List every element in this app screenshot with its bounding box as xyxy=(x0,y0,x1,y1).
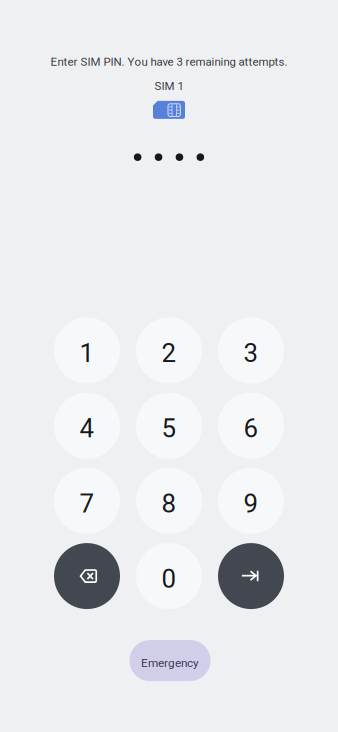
button[interactable]: 7 xyxy=(54,468,120,534)
button[interactable]: 5 xyxy=(136,393,202,459)
button[interactable]: 6 xyxy=(218,393,284,459)
staticText: 8 xyxy=(161,488,176,519)
button[interactable]: 2 xyxy=(136,317,202,383)
staticText: 7 xyxy=(79,488,94,519)
button[interactable]: 8 xyxy=(136,468,202,534)
staticText: 2 xyxy=(161,338,176,368)
button[interactable]: 4 xyxy=(54,393,120,459)
staticText: 0 xyxy=(161,564,176,594)
button[interactable]: Emergency xyxy=(129,640,210,681)
staticText: 1 xyxy=(79,338,94,368)
staticText: 3 xyxy=(243,338,258,368)
staticText: 5 xyxy=(161,413,176,444)
button[interactable]: 1 xyxy=(54,317,120,383)
button[interactable]: 3 xyxy=(218,317,284,383)
button[interactable]: Delete xyxy=(54,543,120,609)
button[interactable]: Submit xyxy=(218,543,284,609)
staticText: 9 xyxy=(243,488,258,519)
staticText: SIM 1 xyxy=(154,79,183,93)
button[interactable]: 0 xyxy=(136,543,202,609)
staticText: 4 xyxy=(79,413,94,444)
staticText: Enter SIM PIN. You have 3 remaining atte… xyxy=(50,55,287,68)
button[interactable]: 9 xyxy=(218,468,284,534)
staticText: Emergency xyxy=(141,656,199,670)
staticText: 6 xyxy=(243,413,258,444)
